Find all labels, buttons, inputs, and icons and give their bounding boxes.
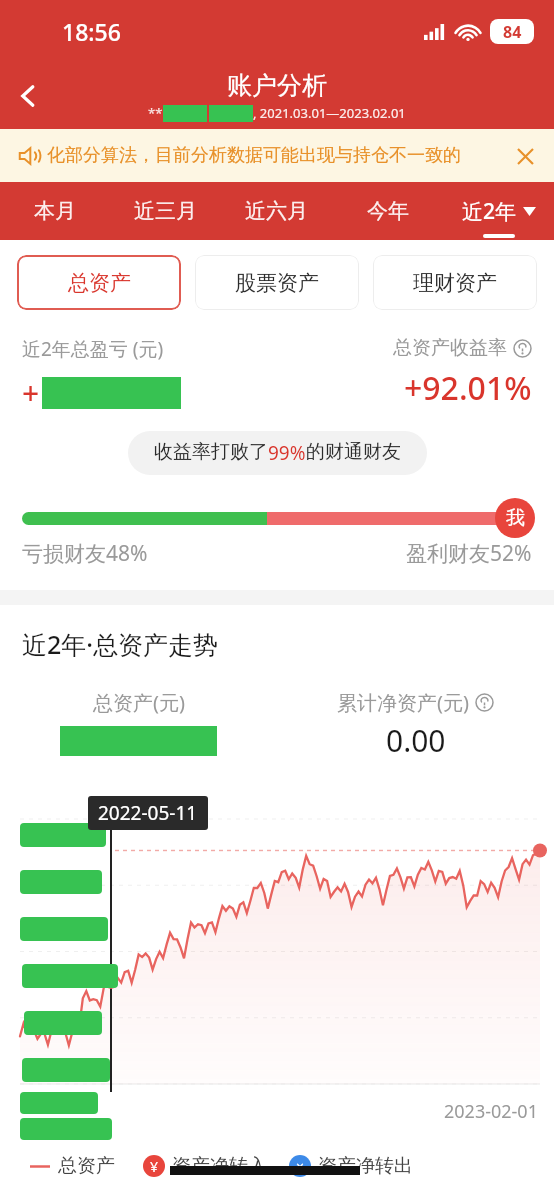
button[interactable]: 化部分算法，目前分析数据可能出现与持仓不一致的 (0, 129, 554, 182)
staticText: 总资产收益率 (393, 336, 507, 360)
staticText: , 2021.03.01—2023.02.01 (253, 104, 406, 122)
staticText: 本月 (34, 198, 76, 224)
button[interactable]: 近六月 (221, 182, 332, 240)
staticText: 近2年·总资产走势 (22, 627, 219, 661)
staticText: 累计净资产(元) (337, 689, 469, 716)
staticText: 股票资产 (235, 270, 319, 296)
staticText: 收益率打败了 (154, 440, 268, 464)
staticText: ** (148, 104, 163, 122)
staticText: 近三月 (134, 198, 197, 224)
staticText: 0.00 (386, 720, 446, 761)
staticText: 我 (506, 506, 525, 530)
staticText: 84 (503, 21, 522, 43)
staticText: + (22, 372, 40, 413)
button[interactable]: 总资产 (17, 255, 181, 310)
staticText: 今年 (367, 198, 409, 224)
staticText: 2022-05-11 (98, 800, 198, 826)
staticText: 总资产 (68, 270, 131, 296)
staticText: 化部分算法，目前分析数据可能出现与持仓不一致的 (47, 144, 514, 167)
staticText: 理财资产 (413, 270, 497, 296)
staticText: 2023-02-01 (444, 1099, 538, 1124)
staticText: 盈利财友52% (406, 539, 532, 568)
staticText: 资产净转出 (318, 1154, 413, 1178)
button[interactable]: Close (514, 145, 536, 167)
staticText: ¥ (150, 1157, 159, 1176)
staticText: 99% (268, 440, 306, 466)
button[interactable]: 近2年 (443, 182, 554, 240)
staticText: 总资产 (58, 1154, 115, 1178)
staticText: 近2年总盈亏 (元) (22, 336, 164, 362)
staticText: 近六月 (245, 198, 308, 224)
staticText: 的财通财友 (306, 440, 401, 464)
staticText: 18:56 (62, 16, 121, 47)
button[interactable]: Back (0, 68, 56, 124)
staticText: × (296, 1157, 305, 1176)
staticText: 亏损财友48% (22, 539, 148, 568)
button[interactable]: 本月 (0, 182, 110, 240)
button[interactable]: 理财资产 (373, 255, 537, 310)
button[interactable]: 今年 (332, 182, 443, 240)
button[interactable]: 股票资产 (195, 255, 359, 310)
staticText: 资产净转入 (172, 1154, 267, 1178)
staticText: 总资产(元) (93, 689, 185, 716)
staticText: 近2年 (462, 197, 517, 226)
staticText: 账户分析 (227, 70, 327, 101)
staticText: +92.01% (404, 366, 532, 410)
button[interactable]: 近三月 (110, 182, 221, 240)
